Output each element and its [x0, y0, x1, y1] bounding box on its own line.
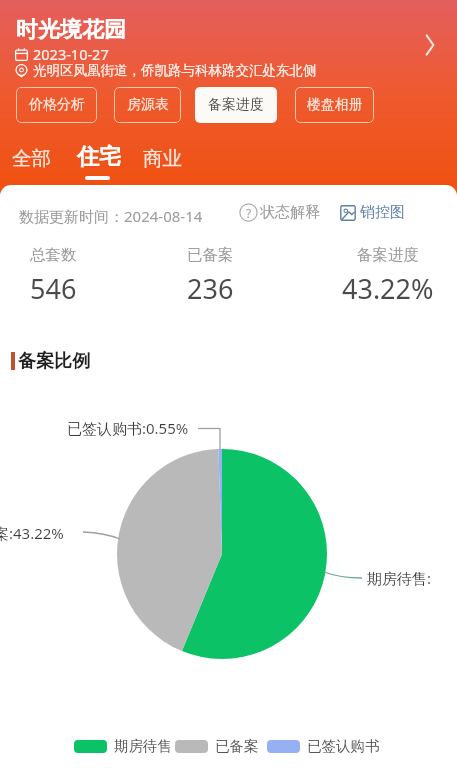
button[interactable]: 销控图	[340, 203, 405, 222]
staticText: 已签认购书	[307, 737, 380, 755]
button[interactable]: 商业	[143, 140, 182, 180]
staticText: 价格分析	[29, 96, 85, 114]
staticText: 住宅	[77, 143, 121, 171]
button[interactable]: 楼盘相册	[295, 87, 374, 123]
staticText: ?	[246, 205, 252, 221]
staticText: 已签认购书:0.55%	[67, 418, 189, 438]
staticText: 备案比例	[18, 350, 90, 373]
staticText: 期房待售	[114, 737, 172, 755]
staticText: 数据更新时间：2024-08-14	[19, 206, 203, 226]
staticText: 已备案:43.22%	[0, 523, 64, 543]
button[interactable]: 房源表	[114, 87, 181, 123]
staticText: 状态解释	[260, 203, 320, 222]
staticText: 546	[30, 270, 77, 307]
staticText: 商业	[143, 146, 182, 171]
staticText: 备案进度	[208, 96, 264, 114]
staticText: 总套数	[30, 245, 77, 265]
button[interactable]: 价格分析	[16, 87, 97, 123]
staticText: 时光境花园	[16, 16, 126, 44]
staticText: 2023-10-27	[33, 44, 109, 64]
button[interactable]: 备案进度	[195, 87, 277, 123]
staticText: 期房待售:	[367, 568, 432, 588]
button[interactable]: ?	[239, 203, 320, 222]
staticText: 楼盘相册	[307, 96, 363, 114]
staticText: 43.22%	[342, 270, 434, 307]
button[interactable]: 住宅	[77, 140, 121, 180]
staticText: 已备案	[215, 737, 259, 755]
button[interactable]: 查看楼盘详情	[415, 30, 445, 60]
staticText: 已备案	[187, 245, 234, 265]
staticText: 销控图	[360, 203, 405, 222]
staticText: 备案进度	[357, 245, 419, 265]
button[interactable]: 全部	[12, 140, 51, 180]
staticText: 光明区凤凰街道，侨凯路与科林路交汇处东北侧	[33, 62, 317, 79]
staticText: 236	[187, 270, 234, 307]
staticText: 全部	[12, 146, 51, 171]
staticText: 房源表	[127, 96, 169, 114]
